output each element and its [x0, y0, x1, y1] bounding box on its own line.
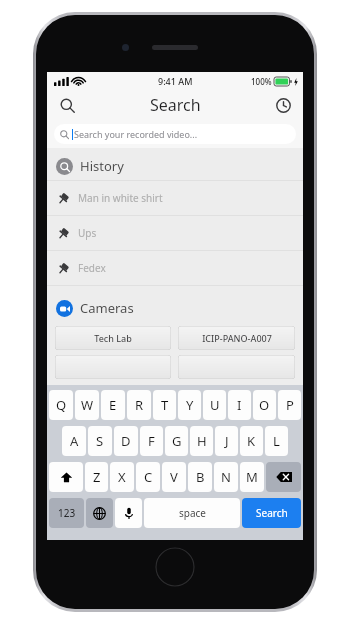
- staticText: T: [161, 396, 169, 414]
- staticText: 9:41 AM: [158, 75, 193, 87]
- button[interactable]: space: [144, 498, 240, 528]
- staticText: A: [70, 432, 79, 450]
- button[interactable]: H: [190, 426, 213, 456]
- staticText: G: [172, 432, 182, 450]
- button[interactable]: Tech Lab: [55, 326, 171, 350]
- button[interactable]: Search: [242, 498, 301, 528]
- staticText: Q: [56, 396, 67, 414]
- button[interactable]: A: [62, 426, 86, 456]
- staticText: W: [81, 396, 94, 414]
- button[interactable]: Numbers: [49, 498, 84, 528]
- button[interactable]: P: [278, 390, 301, 420]
- button[interactable]: Ups: [47, 216, 303, 250]
- staticText: ICIP-PANO-A007: [202, 332, 272, 344]
- staticText: History: [80, 157, 124, 175]
- button[interactable]: X: [110, 462, 134, 492]
- staticText: Cameras: [80, 299, 134, 317]
- staticText: I: [237, 396, 242, 414]
- button[interactable]: D: [114, 426, 138, 456]
- button[interactable]: ICIP-PANO-A007: [178, 326, 295, 350]
- button[interactable]: [55, 355, 171, 379]
- button[interactable]: Recent history: [268, 90, 298, 120]
- button[interactable]: M: [240, 462, 264, 492]
- button[interactable]: Q: [49, 390, 73, 420]
- button[interactable]: K: [240, 426, 263, 456]
- staticText: Tech Lab: [94, 332, 132, 344]
- staticText: Search: [256, 506, 288, 520]
- button[interactable]: Backspace: [266, 462, 301, 492]
- staticText: F: [148, 432, 155, 450]
- button[interactable]: U: [203, 390, 226, 420]
- button[interactable]: V: [162, 462, 186, 492]
- button[interactable]: History: [47, 152, 303, 180]
- staticText: H: [197, 432, 207, 450]
- staticText: Search: [150, 94, 201, 116]
- button[interactable]: Search your recorded video...: [54, 124, 296, 144]
- staticText: N: [221, 468, 231, 486]
- button[interactable]: R: [127, 390, 151, 420]
- staticText: Z: [93, 468, 101, 486]
- staticText: M: [246, 468, 258, 486]
- button[interactable]: E: [101, 390, 125, 420]
- button[interactable]: T: [153, 390, 176, 420]
- button[interactable]: F: [140, 426, 163, 456]
- button[interactable]: Search: [52, 90, 82, 120]
- button[interactable]: S: [88, 426, 112, 456]
- button[interactable]: G: [165, 426, 188, 456]
- staticText: D: [121, 432, 131, 450]
- staticText: 100%: [251, 76, 272, 87]
- button[interactable]: W: [75, 390, 99, 420]
- staticText: Ups: [78, 226, 97, 240]
- button[interactable]: Cameras: [47, 294, 303, 322]
- staticText: Fedex: [78, 261, 106, 275]
- button[interactable]: Y: [178, 390, 201, 420]
- staticText: O: [259, 396, 270, 414]
- button[interactable]: Change keyboard: [86, 498, 113, 528]
- button[interactable]: Dictate: [115, 498, 142, 528]
- button[interactable]: Z: [85, 462, 108, 492]
- staticText: R: [135, 396, 144, 414]
- button[interactable]: L: [265, 426, 288, 456]
- button[interactable]: I: [228, 390, 251, 420]
- staticText: Y: [186, 396, 194, 414]
- button[interactable]: O: [253, 390, 276, 420]
- staticText: U: [210, 396, 220, 414]
- button[interactable]: Shift: [49, 462, 83, 492]
- staticText: C: [144, 468, 153, 486]
- button[interactable]: N: [214, 462, 238, 492]
- button[interactable]: B: [188, 462, 212, 492]
- staticText: Man in white shirt: [78, 191, 163, 205]
- staticText: X: [118, 468, 126, 486]
- staticText: Search your recorded video...: [74, 128, 198, 140]
- staticText: B: [196, 468, 205, 486]
- staticText: 123: [58, 506, 76, 520]
- button[interactable]: J: [215, 426, 238, 456]
- staticText: L: [273, 432, 280, 450]
- staticText: E: [109, 396, 117, 414]
- staticText: space: [179, 506, 206, 520]
- staticText: P: [286, 396, 294, 414]
- staticText: S: [96, 432, 104, 450]
- staticText: V: [170, 468, 178, 486]
- button[interactable]: C: [136, 462, 160, 492]
- button[interactable]: Fedex: [47, 251, 303, 285]
- button[interactable]: [178, 355, 295, 379]
- staticText: J: [225, 432, 229, 450]
- button[interactable]: Man in white shirt: [47, 181, 303, 215]
- staticText: K: [247, 432, 256, 450]
